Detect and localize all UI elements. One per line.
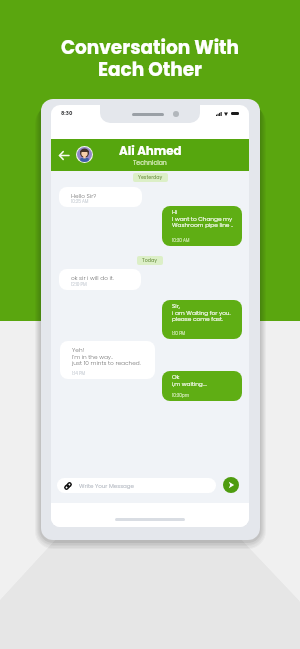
button[interactable]: Send (223, 477, 239, 493)
button[interactable]: ok sir i will do it. (59, 269, 141, 290)
button[interactable]: Sir, i am Waiting for you. please come f… (162, 300, 242, 339)
button[interactable]: Yeh! I'm in the way.. just 10 mints to r… (60, 341, 155, 379)
staticText: Ali Ahmed (119, 143, 182, 160)
button[interactable]: Back (53, 139, 74, 171)
staticText: 10:30 AM (172, 237, 190, 243)
staticText: Yesterday (138, 174, 163, 181)
staticText: Yeh! I'm in the way.. just 10 mints to r… (72, 346, 141, 367)
staticText: Conversation With Each Other (0, 35, 300, 83)
staticText: 12:10 PM (71, 281, 87, 287)
staticText: 10:25 AM (71, 198, 89, 204)
button[interactable]: Profile photo (77, 147, 92, 162)
staticText: Write Your Message (79, 482, 135, 490)
button[interactable]: Ok i,m waiting.... (162, 371, 242, 401)
staticText: 1:14 PM (72, 370, 86, 376)
staticText: Sir, i am Waiting for you. please come f… (172, 302, 231, 323)
staticText: 10:30pm (172, 392, 190, 398)
staticText: 8:30 (61, 110, 73, 117)
staticText: 1:10 PM (172, 330, 186, 336)
staticText: Hi I want to Change my Washroom pipe lin… (172, 208, 234, 229)
staticText: Ok i,m waiting.... (172, 373, 208, 388)
button[interactable]: Hi I want to Change my Washroom pipe lin… (162, 206, 242, 246)
button[interactable]: Hello Sir? (59, 187, 142, 207)
staticText: Hello Sir? (71, 192, 97, 200)
staticText: Technician (133, 158, 167, 167)
staticText: ok sir i will do it. (71, 274, 114, 282)
staticText: Today (142, 257, 158, 264)
button[interactable]: Write Your Message (57, 478, 216, 493)
